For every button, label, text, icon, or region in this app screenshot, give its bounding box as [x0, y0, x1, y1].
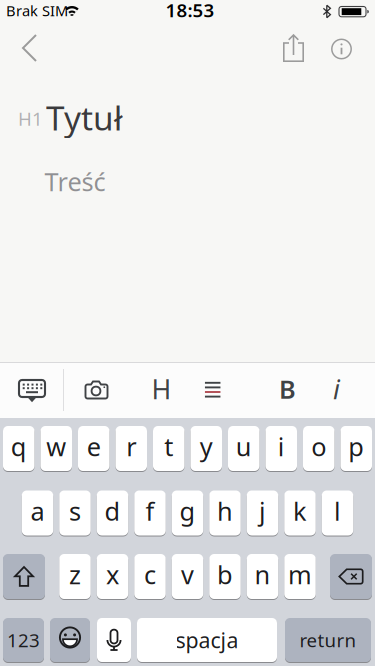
- button[interactable]: x: [97, 554, 128, 599]
- button[interactable]: [331, 38, 352, 59]
- button[interactable]: return: [285, 618, 371, 662]
- staticText: t: [164, 430, 173, 463]
- button[interactable]: l: [322, 490, 353, 535]
- staticText: h: [217, 494, 233, 528]
- staticText: d: [104, 494, 120, 528]
- staticText: x: [106, 558, 119, 591]
- staticText: g: [179, 494, 195, 528]
- staticText: c: [144, 558, 156, 591]
- staticText: k: [293, 494, 307, 528]
- button[interactable]: [205, 382, 220, 397]
- button[interactable]: s: [59, 490, 91, 535]
- staticText: s: [69, 494, 81, 528]
- button[interactable]: n: [247, 554, 278, 599]
- button[interactable]: [22, 34, 37, 62]
- button[interactable]: H: [139, 367, 183, 411]
- staticText: Treść: [44, 165, 105, 198]
- staticText: m: [288, 558, 312, 591]
- button[interactable]: u: [228, 426, 259, 471]
- button[interactable]: b: [209, 554, 241, 599]
- button[interactable]: v: [172, 554, 203, 599]
- staticText: e: [87, 430, 101, 463]
- button[interactable]: q: [3, 426, 34, 471]
- button[interactable]: B: [265, 367, 309, 411]
- staticText: o: [311, 430, 326, 463]
- staticText: return: [299, 628, 356, 652]
- button[interactable]: [18, 379, 46, 403]
- button[interactable]: g: [172, 490, 203, 535]
- button[interactable]: [283, 34, 304, 62]
- staticText: a: [30, 494, 44, 528]
- staticText: spacja: [175, 626, 238, 654]
- button[interactable]: [3, 554, 45, 599]
- staticText: i: [333, 371, 340, 407]
- staticText: B: [279, 372, 296, 406]
- staticText: z: [69, 558, 81, 591]
- button[interactable]: [84, 380, 108, 399]
- staticText: H: [151, 371, 171, 407]
- button[interactable]: m: [284, 554, 316, 599]
- button[interactable]: h: [209, 490, 241, 535]
- button[interactable]: [330, 554, 372, 599]
- button[interactable]: t: [153, 426, 184, 471]
- staticText: b: [217, 558, 233, 591]
- button[interactable]: i: [265, 426, 297, 471]
- button[interactable]: k: [284, 490, 316, 535]
- button[interactable]: c: [134, 554, 166, 599]
- staticText: f: [145, 494, 154, 528]
- staticText: 18:53: [165, 0, 214, 22]
- button[interactable]: o: [303, 426, 334, 471]
- button[interactable]: 123: [3, 618, 44, 662]
- button[interactable]: spacja: [137, 618, 277, 662]
- button[interactable]: j: [247, 490, 278, 535]
- staticText: Brak SIM: [6, 1, 68, 20]
- staticText: Tytuł: [46, 95, 123, 140]
- button[interactable]: d: [97, 490, 128, 535]
- staticText: j: [259, 494, 266, 528]
- button[interactable]: r: [115, 426, 147, 471]
- staticText: y: [200, 430, 213, 463]
- staticText: u: [236, 430, 252, 463]
- staticText: r: [126, 430, 136, 463]
- staticText: v: [181, 558, 194, 591]
- button[interactable]: e: [78, 426, 109, 471]
- button[interactable]: p: [340, 426, 372, 471]
- staticText: n: [254, 558, 270, 591]
- button[interactable]: f: [134, 490, 166, 535]
- staticText: q: [11, 430, 27, 463]
- button[interactable]: w: [40, 426, 72, 471]
- staticText: p: [348, 430, 364, 463]
- button[interactable]: [97, 618, 131, 662]
- staticText: l: [334, 494, 341, 528]
- button[interactable]: i: [314, 367, 358, 411]
- button[interactable]: z: [59, 554, 91, 599]
- button[interactable]: [50, 618, 90, 662]
- staticText: i: [278, 430, 285, 463]
- button[interactable]: a: [22, 490, 53, 535]
- staticText: 123: [7, 628, 40, 652]
- staticText: w: [46, 430, 66, 463]
- staticText: H1: [18, 106, 43, 131]
- button[interactable]: y: [190, 426, 222, 471]
